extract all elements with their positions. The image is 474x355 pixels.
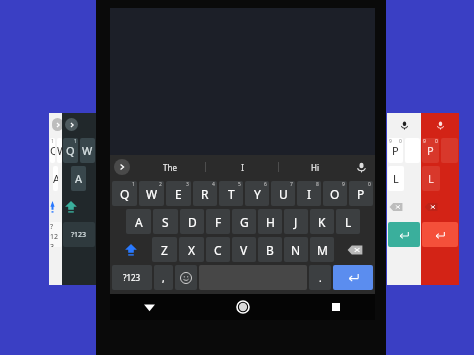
button[interactable]: K xyxy=(310,209,334,234)
button[interactable]: H xyxy=(258,209,282,234)
button[interactable]: Q xyxy=(112,181,137,206)
button[interactable]: C xyxy=(206,237,230,262)
button[interactable]: W xyxy=(80,138,95,163)
staticText: The xyxy=(163,162,177,173)
staticText: X xyxy=(188,242,196,258)
button[interactable]: Q xyxy=(63,138,78,163)
staticText: 9 xyxy=(389,138,392,145)
button[interactable]: T xyxy=(219,181,243,206)
button[interactable]: Home xyxy=(230,294,256,320)
button[interactable]: P xyxy=(422,138,439,163)
button[interactable]: . xyxy=(309,265,331,290)
button[interactable]: M xyxy=(310,237,334,262)
button[interactable]: L xyxy=(336,209,360,234)
button[interactable]: Voice input xyxy=(397,118,411,132)
button[interactable]: , xyxy=(154,265,173,290)
staticText: 6 xyxy=(264,181,267,188)
staticText: ?123 xyxy=(123,272,141,283)
staticText: A xyxy=(135,214,143,230)
button[interactable]: P xyxy=(388,138,403,163)
staticText: 8 xyxy=(316,181,319,188)
staticText: W xyxy=(146,186,158,202)
button[interactable]: Recents xyxy=(323,294,349,320)
button[interactable]: P xyxy=(349,181,373,206)
staticText: E xyxy=(175,186,182,202)
button[interactable]: N xyxy=(284,237,308,262)
button[interactable]: X xyxy=(179,237,204,262)
staticText: 9 xyxy=(423,138,426,145)
button[interactable]: Shift xyxy=(63,194,79,219)
button[interactable]: ?123 xyxy=(112,265,152,290)
button[interactable]: R xyxy=(193,181,217,206)
button[interactable]: I xyxy=(297,181,321,206)
button[interactable]: L xyxy=(422,166,440,191)
button[interactable]: E xyxy=(166,181,191,206)
staticText: G xyxy=(240,214,249,230)
staticText: L xyxy=(345,214,352,230)
button[interactable]: Expand xyxy=(52,118,63,131)
staticText: 7 xyxy=(290,181,293,188)
button[interactable]: A xyxy=(126,209,151,234)
staticText: 2 xyxy=(159,181,162,188)
staticText: 1 xyxy=(74,138,77,145)
button[interactable]: A xyxy=(71,166,86,191)
staticText: 0 xyxy=(368,181,371,188)
button[interactable]: ?123 xyxy=(50,222,62,247)
staticText: . xyxy=(319,271,322,285)
button[interactable]: Y xyxy=(245,181,269,206)
button[interactable]: Backspace xyxy=(336,237,373,262)
button[interactable]: F xyxy=(206,209,230,234)
staticText: K xyxy=(318,214,326,230)
staticText: I xyxy=(307,186,312,202)
button[interactable]: Back xyxy=(136,294,162,320)
button[interactable]: Expand xyxy=(65,118,78,131)
button[interactable]: Expand suggestions xyxy=(114,159,130,175)
button[interactable]: V xyxy=(232,237,256,262)
button[interactable]: U xyxy=(271,181,295,206)
button[interactable]: Backspace xyxy=(388,194,404,219)
button[interactable]: G xyxy=(232,209,256,234)
staticText: O xyxy=(330,186,340,202)
button[interactable]: S xyxy=(153,209,178,234)
staticText: Hi xyxy=(311,162,319,173)
button[interactable]: Shift xyxy=(50,194,55,219)
button[interactable]: Emoji xyxy=(175,265,197,290)
button[interactable]: Voice input xyxy=(352,158,370,176)
button[interactable]: I xyxy=(206,155,278,179)
button[interactable]: W xyxy=(57,138,62,163)
staticText: 0 xyxy=(435,138,438,145)
button[interactable]: Enter xyxy=(422,222,458,247)
staticText: ?123 xyxy=(50,222,62,247)
button[interactable]: O xyxy=(323,181,347,206)
staticText: J xyxy=(294,214,298,230)
button[interactable]: A xyxy=(53,166,58,191)
button[interactable]: Z xyxy=(152,237,177,262)
button[interactable]: Enter xyxy=(388,222,420,247)
staticText: 0 xyxy=(399,138,402,145)
button[interactable]: Q xyxy=(50,138,55,163)
staticText: D xyxy=(188,214,197,230)
button[interactable]: J xyxy=(284,209,308,234)
staticText: A xyxy=(75,171,83,186)
staticText: Z xyxy=(161,242,168,258)
button[interactable]: The xyxy=(134,155,205,179)
button[interactable]: Hi xyxy=(279,155,351,179)
button[interactable]: B xyxy=(258,237,282,262)
staticText: Q xyxy=(66,143,75,158)
button[interactable]: Enter xyxy=(333,265,373,290)
button[interactable]: Voice input xyxy=(433,118,447,132)
staticText: H xyxy=(266,214,275,230)
staticText: V xyxy=(240,242,248,258)
button[interactable]: ?123 xyxy=(63,222,95,247)
button[interactable]: W xyxy=(139,181,164,206)
button[interactable]: Backspace xyxy=(422,194,440,219)
button[interactable]: Shift xyxy=(112,237,150,262)
staticText: N xyxy=(291,242,301,258)
button[interactable]: D xyxy=(180,209,204,234)
button[interactable]: L xyxy=(388,166,404,191)
staticText: Q xyxy=(50,143,55,158)
staticText: W xyxy=(82,143,93,158)
